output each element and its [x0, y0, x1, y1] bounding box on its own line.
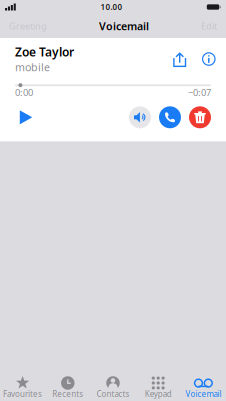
staticText: Greeting: [9, 20, 47, 32]
button[interactable]: Recents: [45, 369, 90, 400]
staticText: Voicemail: [185, 389, 221, 399]
staticText: 0:00: [15, 86, 33, 98]
button[interactable]: Contacts: [90, 369, 136, 400]
staticText: Contacts: [96, 389, 129, 399]
button[interactable]: Keypad: [136, 369, 181, 400]
staticText: Zoe Taylor: [15, 44, 74, 60]
button[interactable]: Edit: [201, 20, 217, 32]
staticText: Voicemail: [99, 19, 149, 33]
button[interactable]: Play: [15, 106, 37, 128]
staticText: Recents: [52, 389, 83, 399]
button[interactable]: Voicemail: [181, 369, 226, 400]
button[interactable]: Greeting: [9, 20, 47, 32]
staticText: Keypad: [145, 389, 172, 399]
staticText: 10.00: [100, 2, 122, 12]
button[interactable]: Call back: [159, 106, 181, 128]
staticText: Favourites: [3, 389, 42, 399]
staticText: −0:07: [188, 86, 211, 98]
staticText: mobile: [15, 60, 50, 74]
staticText: Edit: [201, 20, 217, 32]
button[interactable]: Info: [203, 53, 215, 65]
button[interactable]: Share: [173, 52, 185, 66]
button[interactable]: Delete: [189, 106, 211, 128]
button[interactable]: Favourites: [0, 369, 45, 400]
button[interactable]: Speaker: [129, 106, 151, 128]
